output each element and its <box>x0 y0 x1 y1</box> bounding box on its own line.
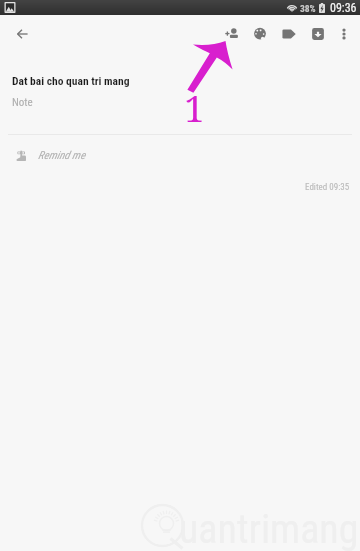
staticText: Note <box>12 96 33 109</box>
button[interactable]: More options <box>330 19 358 49</box>
staticText: 1 <box>184 82 205 132</box>
staticText: Remind me <box>38 149 86 162</box>
staticText: 09:36 <box>330 1 357 15</box>
staticText: Edited 09:35 <box>305 182 350 193</box>
button[interactable]: Archive <box>304 19 332 49</box>
staticText: uantrimang <box>179 506 359 551</box>
button[interactable]: Collaborator <box>218 19 246 49</box>
staticText: 38% <box>300 3 316 14</box>
button[interactable]: Label <box>275 19 303 49</box>
button[interactable]: Back <box>8 19 36 49</box>
button[interactable]: Remind me <box>0 135 360 176</box>
staticText: Dat bai cho quan tri mang <box>12 74 130 87</box>
button[interactable]: Change colour <box>246 19 274 49</box>
